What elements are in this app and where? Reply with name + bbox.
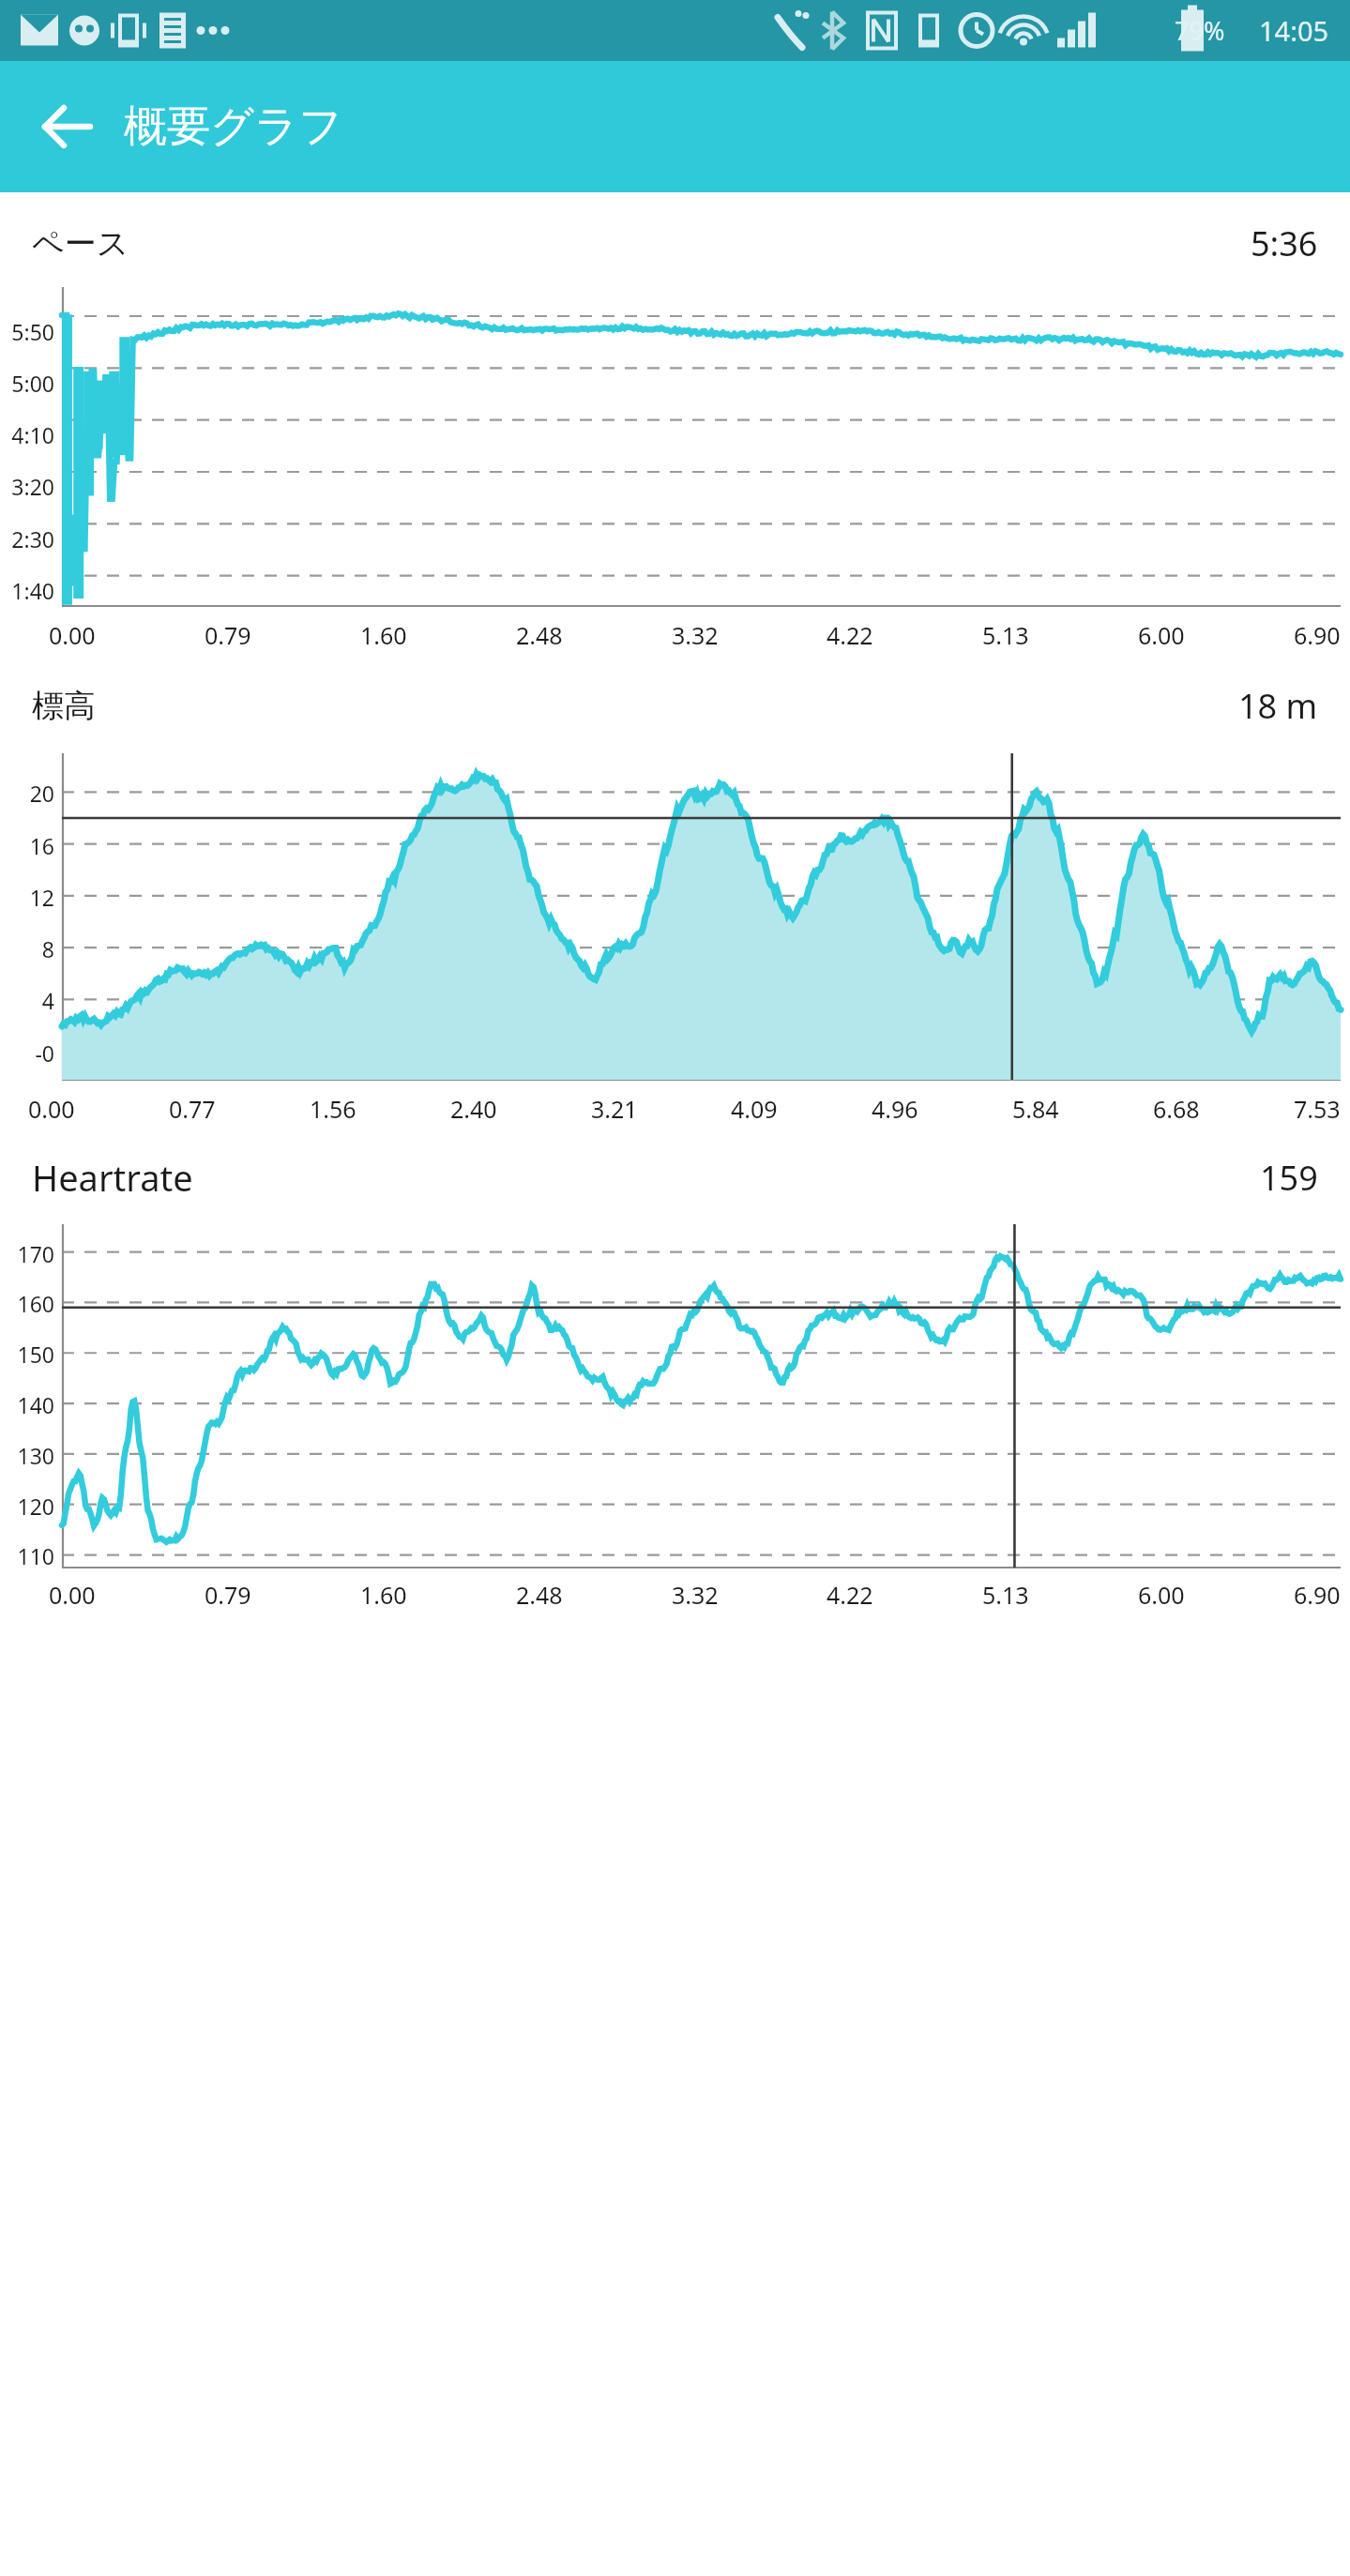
staticText: 1.60 bbox=[360, 1579, 407, 1611]
staticText: ペース bbox=[32, 223, 129, 264]
staticText: 1.56 bbox=[310, 1093, 356, 1125]
staticText: 8 bbox=[0, 934, 54, 963]
staticText: 6.90 bbox=[1294, 619, 1341, 651]
staticText: 159 bbox=[1260, 1155, 1318, 1201]
staticText: 12 bbox=[0, 883, 54, 912]
staticText: 3.32 bbox=[672, 1579, 719, 1611]
staticText: 3.21 bbox=[591, 1093, 638, 1125]
staticText: 5.84 bbox=[1012, 1093, 1059, 1125]
staticText: 4 bbox=[0, 986, 54, 1015]
staticText: 6.90 bbox=[1294, 1579, 1341, 1611]
staticText: 14:05 bbox=[1259, 12, 1329, 49]
staticText: 170 bbox=[0, 1239, 54, 1268]
staticText: 150 bbox=[0, 1340, 54, 1369]
staticText: 概要グラフ bbox=[124, 99, 343, 154]
staticText: 6.68 bbox=[1153, 1093, 1200, 1125]
staticText: -0 bbox=[0, 1038, 54, 1068]
staticText: 5:50 bbox=[0, 317, 54, 346]
staticText: 3.32 bbox=[672, 619, 719, 651]
staticText: 79% bbox=[1175, 13, 1225, 48]
staticText: 130 bbox=[0, 1441, 54, 1470]
staticText: 4.09 bbox=[731, 1093, 778, 1125]
staticText: Heartrate bbox=[32, 1153, 193, 1202]
staticText: 0.00 bbox=[49, 1579, 96, 1611]
staticText: 4.22 bbox=[827, 1579, 873, 1611]
staticText: 0.79 bbox=[205, 1579, 251, 1611]
staticText: 1.60 bbox=[360, 619, 407, 651]
staticText: 1:40 bbox=[0, 576, 54, 605]
staticText: 5:00 bbox=[0, 369, 54, 398]
staticText: 160 bbox=[0, 1289, 54, 1318]
staticText: 16 bbox=[0, 831, 54, 860]
staticText: 110 bbox=[0, 1541, 54, 1570]
staticText: 3:20 bbox=[0, 472, 54, 501]
staticText: 120 bbox=[0, 1492, 54, 1521]
staticText: 0.00 bbox=[49, 619, 96, 651]
staticText: 5.13 bbox=[982, 619, 1029, 651]
staticText: 7.53 bbox=[1294, 1093, 1341, 1125]
staticText: 18 m bbox=[1238, 683, 1318, 729]
staticText: 2.40 bbox=[450, 1093, 497, 1125]
staticText: 20 bbox=[0, 779, 54, 808]
staticText: 2:30 bbox=[0, 524, 54, 553]
staticText: 4.22 bbox=[827, 619, 873, 651]
button[interactable]: Back bbox=[21, 82, 111, 172]
staticText: 2.48 bbox=[516, 1579, 563, 1611]
staticText: 0.79 bbox=[205, 619, 251, 651]
staticText: 6.00 bbox=[1138, 1579, 1185, 1611]
staticText: 2.48 bbox=[516, 619, 563, 651]
staticText: 0.00 bbox=[28, 1093, 75, 1125]
staticText: 0.77 bbox=[169, 1093, 216, 1125]
staticText: 4:10 bbox=[0, 420, 54, 449]
staticText: 140 bbox=[0, 1390, 54, 1419]
staticText: 5:36 bbox=[1251, 220, 1318, 266]
staticText: 4.96 bbox=[872, 1093, 918, 1125]
staticText: 標高 bbox=[32, 686, 96, 726]
staticText: 5.13 bbox=[982, 1579, 1029, 1611]
staticText: 6.00 bbox=[1138, 619, 1185, 651]
